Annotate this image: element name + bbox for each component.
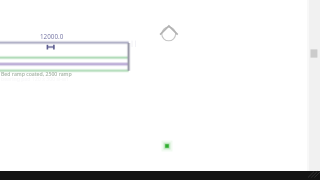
staticText: bearing pad 120 x 300 sl-w1 bbox=[1, 75, 70, 82]
button[interactable]: Bed ramp coated, 2500 ramp bbox=[0, 70, 74, 80]
button[interactable]: Drawing viewport bbox=[0, 0, 320, 180]
button[interactable]: 12000.0 bbox=[38, 31, 65, 40]
button[interactable]: Reset view orientation bbox=[159, 22, 181, 44]
button[interactable]: Scroll drawing vertically bbox=[307, 0, 320, 171]
staticText: Bed ramp coated, 2500 ramp bbox=[1, 70, 72, 77]
staticText: 12000.0 bbox=[40, 32, 64, 41]
